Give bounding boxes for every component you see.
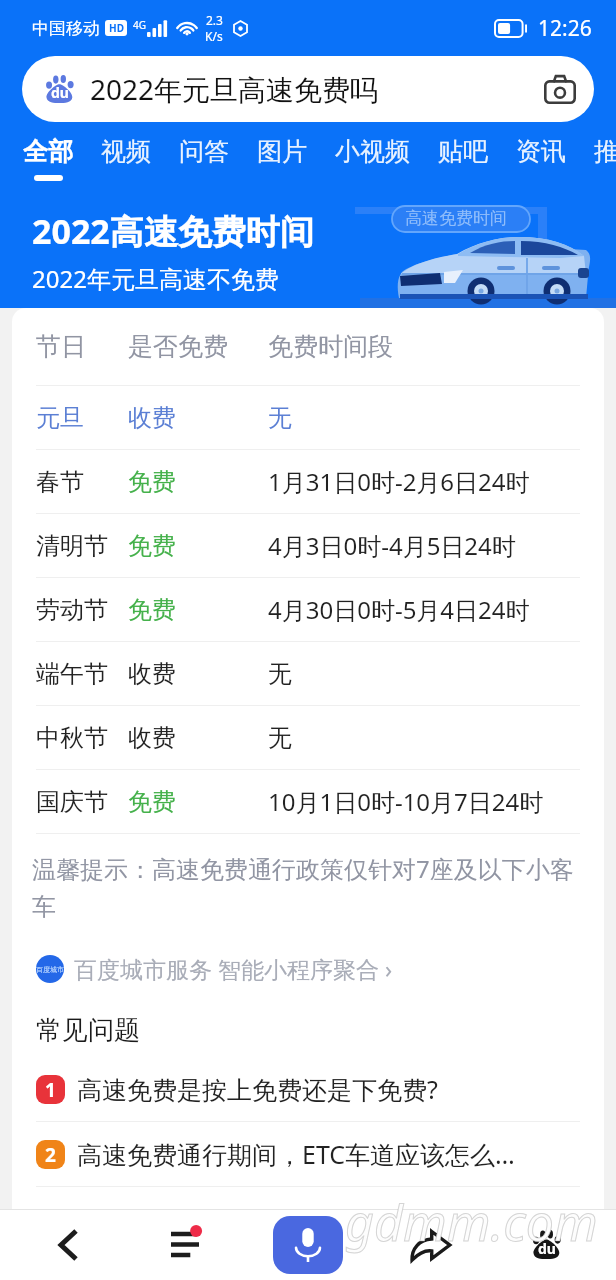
- button[interactable]: 端午节: [12, 642, 604, 705]
- button[interactable]: 全部: [23, 136, 73, 181]
- button[interactable]: 推荐: [594, 136, 616, 175]
- button[interactable]: Camera search: [530, 59, 590, 119]
- staticText: 小视频: [335, 136, 410, 167]
- staticText: 百度城市服务 智能小程序聚合 ›: [74, 953, 393, 984]
- staticText: 2: [45, 1142, 56, 1168]
- staticText: 温馨提示：高速免费通行政策仅针对7座及以下小客车: [32, 852, 578, 923]
- staticText: du: [538, 1239, 556, 1258]
- staticText: 春节: [36, 467, 128, 497]
- staticText: 收费: [128, 659, 268, 689]
- button[interactable]: 2: [12, 1122, 604, 1186]
- staticText: 高速免费时间: [405, 208, 507, 229]
- staticText: 2022年元旦高速不免费: [32, 262, 279, 295]
- staticText: 无: [268, 659, 292, 689]
- staticText: 国庆节: [36, 787, 128, 817]
- staticText: 免费: [128, 531, 268, 561]
- button[interactable]: 春节: [12, 450, 604, 513]
- button[interactable]: Back: [0, 1209, 136, 1280]
- staticText: 4月3日0时-4月5日24时: [268, 529, 516, 562]
- button[interactable]: 贴吧: [438, 136, 488, 175]
- staticText: 1月31日0时-2月6日24时: [268, 465, 530, 498]
- staticText: 是否免费: [128, 331, 268, 362]
- button[interactable]: 百度城市: [36, 953, 393, 984]
- staticText: 高速免费是按上免费还是下免费?: [77, 1072, 438, 1106]
- staticText: 免费: [128, 467, 268, 497]
- button[interactable]: 图片: [257, 136, 307, 175]
- button[interactable]: 1: [12, 1057, 604, 1121]
- staticText: 2.3: [206, 12, 223, 28]
- staticText: 视频: [101, 136, 151, 167]
- staticText: 免费时间段: [268, 331, 393, 362]
- button[interactable]: 问答: [179, 136, 229, 175]
- staticText: 4G: [133, 18, 146, 32]
- staticText: K/s: [205, 28, 223, 44]
- staticText: 元旦: [36, 403, 128, 433]
- staticText: 资讯: [516, 136, 566, 167]
- staticText: 2022高速免费时间: [32, 208, 314, 254]
- button[interactable]: 视频: [101, 136, 151, 175]
- staticText: 劳动节: [36, 595, 128, 625]
- staticText: 节日: [36, 331, 128, 362]
- staticText: 10月1日0时-10月7日24时: [268, 785, 544, 818]
- button[interactable]: 国庆节: [12, 770, 604, 833]
- staticText: 4月30日0时-5月4日24时: [268, 593, 530, 626]
- staticText: 清明节: [36, 531, 128, 561]
- button[interactable]: 清明节: [12, 514, 604, 577]
- button[interactable]: 资讯: [516, 136, 566, 175]
- button[interactable]: 小视频: [335, 136, 410, 175]
- staticText: HD: [109, 21, 124, 35]
- staticText: 常见问题: [36, 1014, 140, 1047]
- button[interactable]: 元旦: [12, 386, 604, 449]
- button[interactable]: Menu: [136, 1209, 233, 1280]
- staticText: 推荐: [594, 136, 616, 167]
- button[interactable]: 中秋节: [12, 706, 604, 769]
- button[interactable]: Voice search: [273, 1216, 343, 1274]
- button[interactable]: du: [22, 56, 594, 122]
- staticText: du: [51, 83, 69, 102]
- button[interactable]: Share: [382, 1209, 478, 1280]
- staticText: 贴吧: [438, 136, 488, 167]
- staticText: 问答: [179, 136, 229, 167]
- staticText: 中国移动: [32, 18, 100, 39]
- staticText: 12:26: [538, 14, 592, 43]
- staticText: 1: [45, 1077, 56, 1103]
- staticText: 无: [268, 723, 292, 753]
- staticText: 中秋节: [36, 723, 128, 753]
- staticText: 无: [268, 403, 292, 433]
- staticText: 全部: [23, 136, 73, 167]
- staticText: 免费: [128, 595, 268, 625]
- staticText: 免费: [128, 787, 268, 817]
- staticText: 2022年元旦高速免费吗: [90, 70, 379, 108]
- button[interactable]: Baidu home: [478, 1209, 616, 1280]
- staticText: 收费: [128, 723, 268, 753]
- staticText: gdmm.com: [345, 1188, 598, 1256]
- staticText: 百度城市: [36, 965, 64, 974]
- staticText: gdmm.com: [345, 1188, 598, 1256]
- staticText: 端午节: [36, 659, 128, 689]
- staticText: 收费: [128, 403, 268, 433]
- staticText: 高速免费通行期间，ETC车道应该怎么…: [77, 1137, 515, 1171]
- button[interactable]: 劳动节: [12, 578, 604, 641]
- staticText: 图片: [257, 136, 307, 167]
